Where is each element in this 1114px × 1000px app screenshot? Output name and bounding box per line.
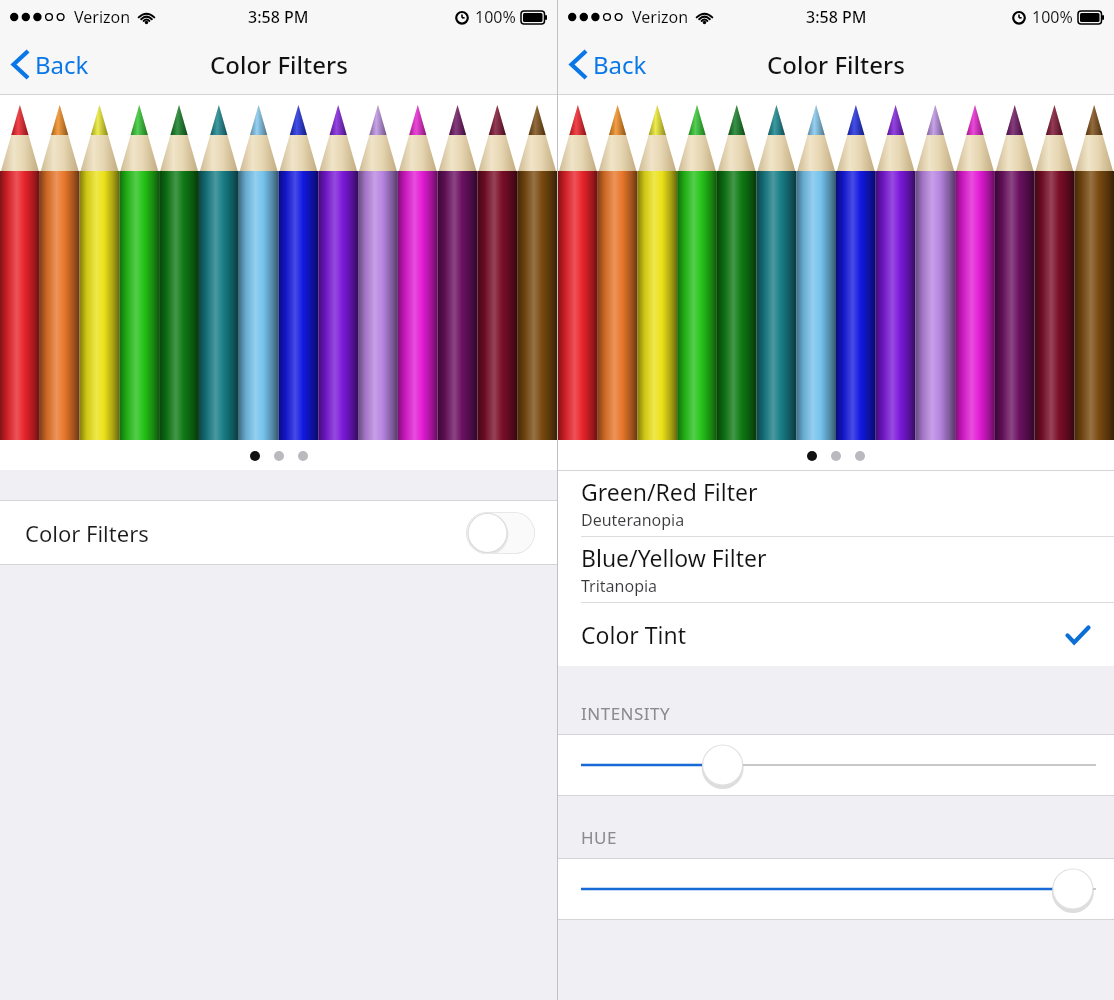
staticText: Color Filters [25, 518, 149, 548]
staticText: Deuteranopia [581, 509, 685, 531]
staticText: Color Filters [210, 48, 348, 81]
staticText: INTENSITY [581, 702, 671, 725]
staticText: 100% [1032, 6, 1073, 28]
button[interactable]: HUE slider [558, 858, 1114, 920]
staticText: Tritanopia [581, 575, 658, 597]
button[interactable]: Green/Red Filter [558, 471, 1114, 536]
staticText: HUE [581, 826, 617, 849]
staticText: 3:58 PM [806, 6, 867, 28]
button[interactable]: Color Filters toggle [466, 512, 535, 554]
staticText: Back [593, 48, 647, 81]
button[interactable]: INTENSITY slider [558, 734, 1114, 796]
staticText: Green/Red Filter [581, 476, 758, 507]
staticText: Color Tint [581, 619, 687, 650]
staticText: 3:58 PM [248, 6, 309, 28]
button[interactable]: Color Filters [0, 500, 557, 565]
staticText: Color Filters [767, 48, 905, 81]
button[interactable]: Blue/Yellow Filter [558, 537, 1114, 602]
staticText: Verizon [74, 6, 131, 28]
button[interactable]: Back [0, 40, 103, 89]
staticText: Blue/Yellow Filter [581, 542, 767, 573]
button[interactable]: Color Tint [558, 603, 1114, 666]
staticText: 100% [475, 6, 516, 28]
staticText: Verizon [632, 6, 689, 28]
button[interactable]: Back [558, 40, 661, 89]
staticText: Back [35, 48, 89, 81]
